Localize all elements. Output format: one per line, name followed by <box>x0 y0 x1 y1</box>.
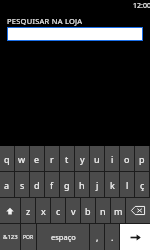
button[interactable]: l <box>120 172 134 197</box>
button[interactable]: c <box>51 198 65 223</box>
staticText: PESQUISAR NA LOJA <box>7 16 83 26</box>
button[interactable]: y <box>75 146 89 171</box>
staticText: 12:00 <box>133 1 150 11</box>
button[interactable]: . <box>105 224 119 250</box>
staticText: f <box>50 179 54 191</box>
button[interactable]: n <box>96 198 110 223</box>
staticText: v <box>71 205 76 217</box>
button[interactable]: k <box>105 172 119 197</box>
button[interactable]: z <box>21 198 35 223</box>
staticText: m <box>114 205 123 217</box>
staticText: , <box>96 231 99 243</box>
button[interactable]: r <box>45 146 59 171</box>
staticText: w <box>18 153 26 165</box>
button[interactable]: Shift <box>0 198 20 223</box>
button[interactable]: x <box>36 198 50 223</box>
button[interactable]: h <box>75 172 89 197</box>
staticText: y <box>80 153 85 165</box>
staticText: ç <box>140 179 145 191</box>
button[interactable]: d <box>30 172 44 197</box>
button[interactable]: e <box>30 146 44 171</box>
staticText: x <box>41 205 46 217</box>
staticText: h <box>79 179 85 191</box>
button[interactable]: q <box>0 146 14 171</box>
button[interactable]: , <box>90 224 104 250</box>
button[interactable]: g <box>60 172 74 197</box>
button[interactable]: w <box>15 146 29 171</box>
staticText: espaço <box>51 232 76 242</box>
staticText: g <box>64 179 70 191</box>
staticText: d <box>34 179 40 191</box>
button[interactable]: j <box>90 172 104 197</box>
staticText: o <box>124 153 130 165</box>
button[interactable]: espaço <box>37 224 89 250</box>
button[interactable]: a <box>0 172 14 197</box>
button[interactable]: Backspace <box>126 198 150 223</box>
staticText: i <box>111 153 114 165</box>
staticText: b <box>85 205 91 217</box>
staticText: e <box>34 153 40 165</box>
button[interactable]: m <box>111 198 125 223</box>
staticText: q <box>4 153 10 165</box>
staticText: p <box>139 153 145 165</box>
button[interactable]: Enter <box>120 224 150 250</box>
button[interactable]: ç <box>135 172 149 197</box>
button[interactable]: u <box>90 146 104 171</box>
button[interactable]: POR <box>21 224 36 250</box>
staticText: t <box>65 153 69 165</box>
staticText: z <box>26 205 31 217</box>
staticText: n <box>100 205 106 217</box>
staticText: k <box>110 179 115 191</box>
staticText: l <box>126 179 129 191</box>
staticText: c <box>56 205 61 217</box>
button[interactable]: v <box>66 198 80 223</box>
staticText: a <box>4 179 10 191</box>
staticText: u <box>94 153 100 165</box>
staticText: r <box>50 153 54 165</box>
button[interactable]: &123 <box>0 224 20 250</box>
button[interactable]: t <box>60 146 74 171</box>
button[interactable]: i <box>105 146 119 171</box>
staticText: &123 <box>3 233 18 241</box>
button[interactable]: b <box>81 198 95 223</box>
button[interactable]: f <box>45 172 59 197</box>
staticText: s <box>20 179 25 191</box>
staticText: j <box>96 179 99 191</box>
button[interactable]: s <box>15 172 29 197</box>
button[interactable]: p <box>135 146 149 171</box>
staticText: . <box>111 231 114 243</box>
staticText: POR <box>23 234 34 241</box>
button[interactable]: o <box>120 146 134 171</box>
